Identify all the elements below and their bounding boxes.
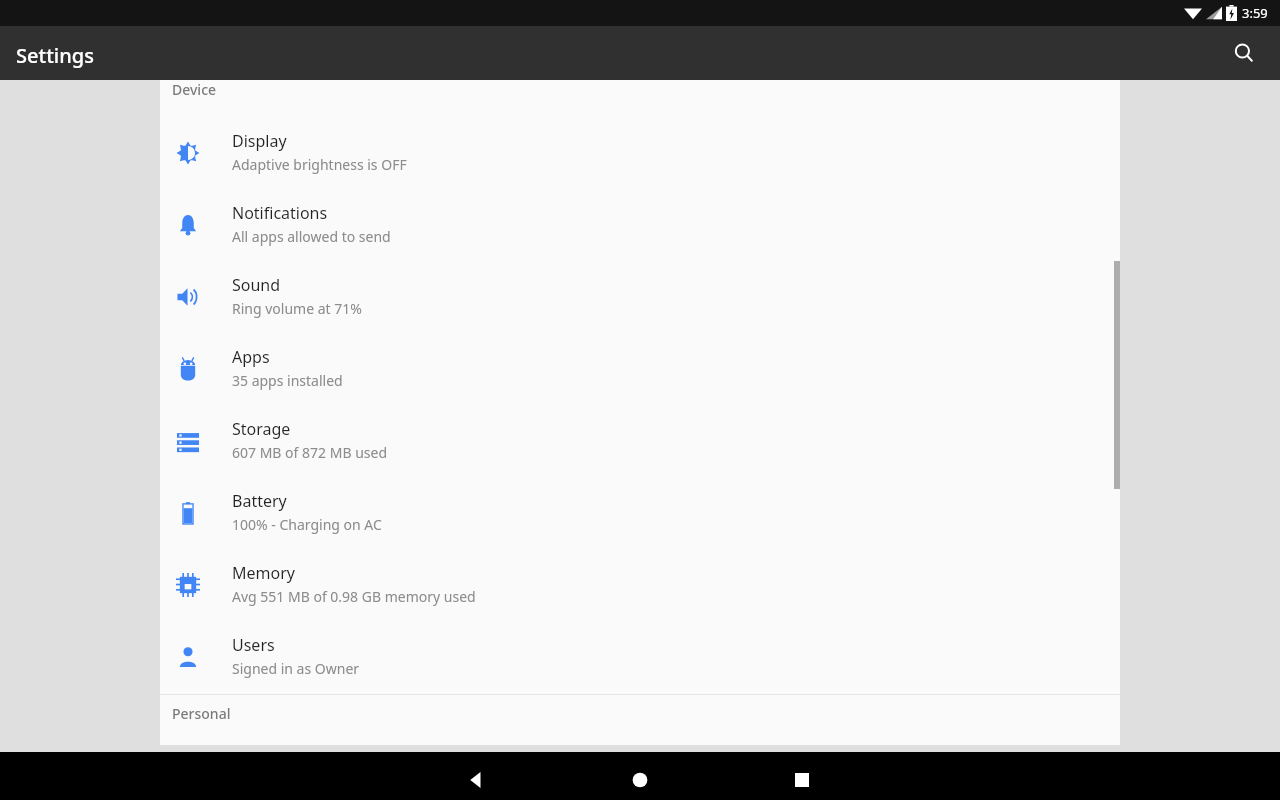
staticText: Memory [232, 562, 295, 584]
staticText: Display [232, 130, 287, 152]
button[interactable]: Notifications [160, 189, 1120, 261]
button[interactable]: Recent apps [778, 756, 826, 800]
staticText: Adaptive brightness is OFF [232, 155, 407, 174]
staticText: Users [232, 634, 275, 656]
staticText: Settings [16, 42, 94, 69]
staticText: Sound [232, 274, 281, 296]
button[interactable]: Display [160, 117, 1120, 189]
staticText: Ring volume at 71% [232, 299, 362, 318]
button[interactable]: Storage [160, 405, 1120, 477]
staticText: Personal [172, 704, 231, 723]
button[interactable]: Search [1224, 33, 1264, 73]
staticText: Signed in as Owner [232, 659, 360, 678]
staticText: Device [172, 80, 217, 99]
staticText: Avg 551 MB of 0.98 GB memory used [232, 587, 476, 606]
staticText: Battery [232, 490, 287, 512]
button[interactable]: Battery [160, 477, 1120, 549]
button[interactable]: Users [160, 621, 1120, 693]
button[interactable]: Back [452, 756, 500, 800]
staticText: Apps [232, 346, 270, 368]
staticText: Storage [232, 418, 291, 440]
staticText: Notifications [232, 202, 328, 224]
button[interactable]: Sound [160, 261, 1120, 333]
staticText: 607 MB of 872 MB used [232, 443, 387, 462]
staticText: 3:59 [1242, 4, 1268, 22]
button[interactable]: Apps [160, 333, 1120, 405]
button[interactable]: Home [616, 756, 664, 800]
staticText: 35 apps installed [232, 371, 343, 390]
button[interactable]: Memory [160, 549, 1120, 621]
staticText: 100% - Charging on AC [232, 515, 382, 534]
staticText: All apps allowed to send [232, 227, 391, 246]
